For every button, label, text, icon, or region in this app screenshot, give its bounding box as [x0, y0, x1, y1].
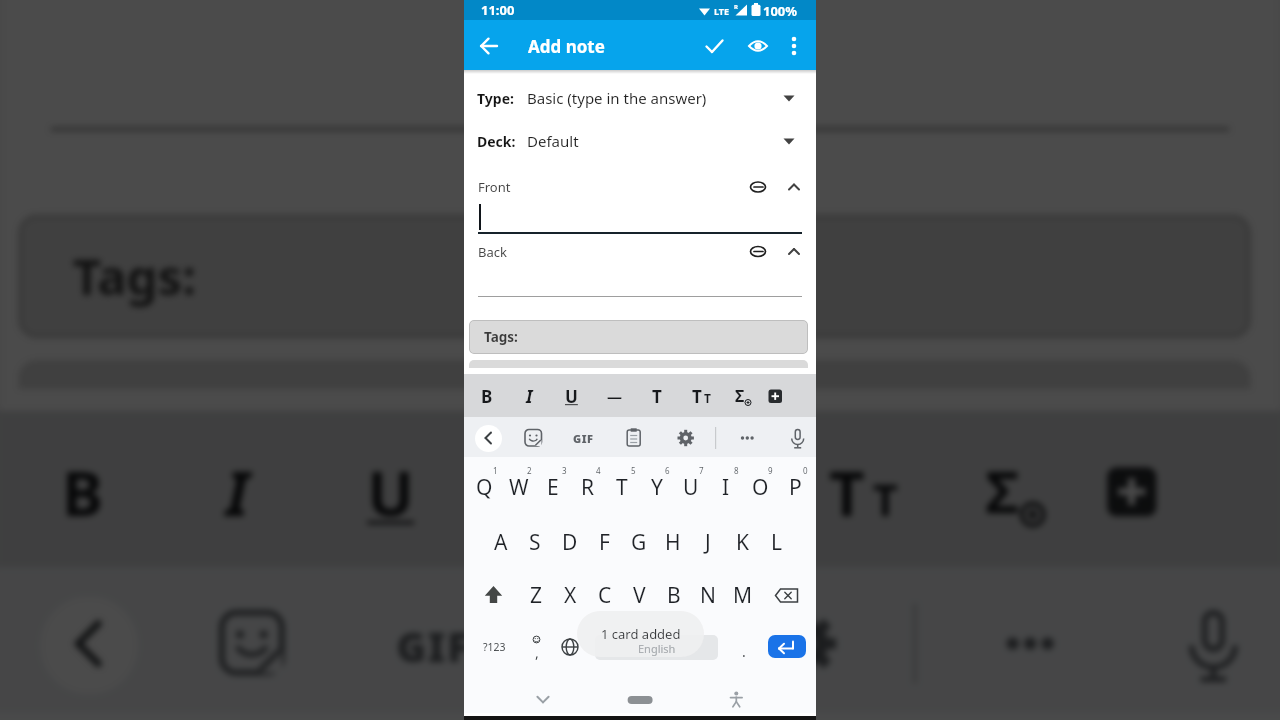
button[interactable]: Z — [519, 579, 553, 611]
button[interactable] — [960, 440, 1062, 542]
button[interactable]: G — [622, 526, 656, 558]
button[interactable] — [564, 589, 673, 698]
button[interactable] — [556, 633, 584, 661]
button[interactable] — [479, 581, 508, 609]
staticText: I — [526, 385, 533, 408]
button[interactable] — [625, 684, 655, 713]
button[interactable] — [772, 581, 802, 609]
button[interactable] — [515, 382, 543, 410]
staticText: 11:00 — [481, 1, 515, 19]
staticText: I — [225, 451, 251, 534]
button[interactable] — [651, 440, 753, 542]
button[interactable]: V — [622, 579, 656, 611]
button[interactable]: P — [778, 471, 812, 503]
button[interactable] — [811, 440, 913, 542]
button[interactable]: I — [709, 471, 743, 503]
button[interactable] — [768, 635, 806, 658]
button[interactable]: L — [760, 526, 794, 558]
button[interactable] — [518, 423, 548, 453]
staticText: English — [638, 641, 676, 656]
button[interactable]: K — [725, 526, 759, 558]
button[interactable] — [761, 382, 789, 410]
button[interactable] — [1080, 440, 1182, 542]
staticText: 9 — [768, 465, 773, 476]
button[interactable]: T — [605, 471, 639, 503]
button[interactable] — [475, 425, 502, 452]
button[interactable] — [522, 127, 802, 155]
button[interactable] — [18, 215, 1251, 338]
button[interactable] — [40, 596, 138, 694]
staticText: J — [705, 528, 711, 557]
button[interactable] — [522, 84, 802, 112]
button[interactable] — [783, 423, 813, 453]
button[interactable] — [528, 684, 557, 713]
button[interactable]: , — [527, 636, 547, 668]
button[interactable] — [728, 382, 756, 410]
button[interactable]: . — [734, 635, 754, 667]
button[interactable] — [687, 382, 715, 410]
button[interactable] — [643, 382, 671, 410]
button[interactable] — [744, 32, 772, 60]
staticText: T — [616, 473, 628, 502]
button[interactable]: Q — [467, 471, 501, 503]
button[interactable]: GIF — [353, 585, 513, 702]
button[interactable] — [671, 423, 701, 453]
button[interactable] — [1160, 589, 1269, 698]
button[interactable]: D — [553, 526, 587, 558]
button[interactable] — [498, 440, 600, 542]
button[interactable] — [557, 382, 585, 410]
button[interactable] — [36, 11, 1244, 134]
staticText: — — [520, 454, 578, 527]
staticText: T — [684, 451, 720, 534]
button[interactable]: X — [553, 579, 587, 611]
button[interactable] — [601, 382, 629, 410]
button[interactable]: F — [587, 526, 621, 558]
button[interactable] — [474, 200, 806, 234]
button[interactable] — [475, 32, 503, 60]
staticText: G — [631, 528, 647, 557]
button[interactable] — [474, 264, 806, 298]
button[interactable] — [732, 423, 762, 453]
button[interactable] — [722, 684, 751, 713]
button[interactable]: H — [656, 526, 690, 558]
button[interactable]: A — [484, 526, 518, 558]
button[interactable]: E — [536, 471, 570, 503]
button[interactable] — [619, 423, 649, 453]
button[interactable]: U — [674, 471, 708, 503]
staticText: 0 — [803, 465, 808, 476]
button[interactable]: N — [691, 579, 725, 611]
staticText: O — [752, 473, 769, 502]
button[interactable]: S — [518, 526, 552, 558]
button[interactable]: M — [726, 579, 760, 611]
button[interactable] — [338, 440, 440, 542]
staticText: R — [734, 3, 738, 11]
button[interactable] — [196, 589, 305, 698]
staticText: M — [733, 581, 753, 610]
button[interactable]: C — [588, 579, 622, 611]
button[interactable]: R — [571, 471, 605, 503]
staticText: . — [742, 642, 746, 661]
staticText: B — [62, 451, 105, 534]
button[interactable] — [185, 440, 287, 542]
button[interactable]: J — [691, 526, 725, 558]
button[interactable] — [33, 440, 135, 542]
staticText: Y — [651, 473, 663, 502]
button[interactable]: GIF — [561, 422, 605, 454]
button[interactable] — [464, 20, 816, 70]
button[interactable]: O — [743, 471, 777, 503]
staticText: GIF — [396, 618, 473, 673]
staticText: 6 — [665, 465, 670, 476]
button[interactable]: Y — [640, 471, 674, 503]
button[interactable] — [469, 320, 808, 354]
button[interactable]: W — [502, 471, 536, 503]
staticText: Σ — [735, 385, 745, 407]
button[interactable] — [595, 635, 718, 660]
button[interactable] — [473, 382, 501, 410]
staticText: W — [509, 473, 529, 502]
button[interactable] — [753, 589, 862, 698]
button[interactable] — [974, 589, 1084, 698]
button[interactable]: ?123 — [474, 631, 514, 663]
button[interactable] — [780, 32, 808, 60]
button[interactable] — [700, 32, 728, 60]
button[interactable]: B — [657, 579, 691, 611]
